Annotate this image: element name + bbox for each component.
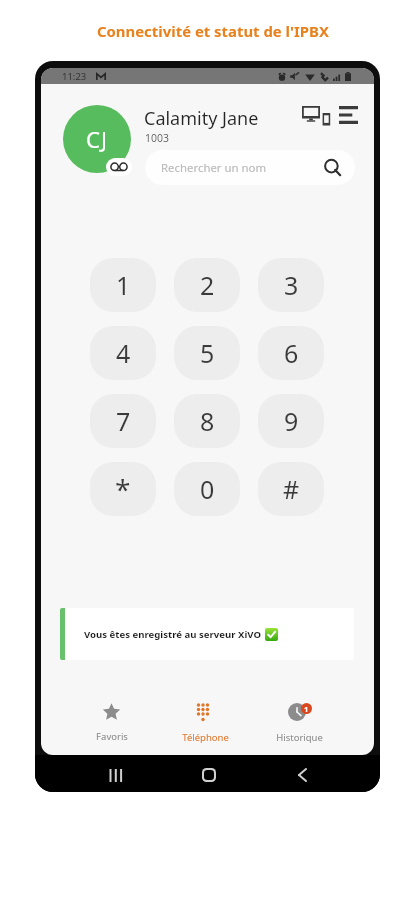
staticText: 11:23 [62, 70, 87, 83]
staticText: 8 [200, 404, 215, 438]
button[interactable]: Back [285, 758, 319, 792]
staticText: Connectivité et statut de l'IPBX [97, 21, 329, 41]
staticText: * [115, 470, 131, 508]
staticText: Calamity Jane [144, 106, 259, 131]
staticText: 1003 [145, 131, 170, 145]
staticText: Téléphone [182, 731, 229, 744]
staticText: 1 [304, 704, 309, 714]
button[interactable]: 1 [90, 258, 156, 312]
button[interactable]: 7 [90, 394, 156, 448]
button[interactable]: 8 [174, 394, 240, 448]
staticText: 2 [200, 268, 215, 302]
staticText: 0 [200, 472, 215, 506]
button[interactable]: Rechercher un nom [145, 150, 355, 185]
staticText: Historique [276, 731, 323, 744]
button[interactable]: Vous êtes enregistré au serveur XiVO [60, 608, 354, 660]
staticText: 1 [116, 268, 131, 302]
staticText: 9 [284, 404, 299, 438]
staticText: 5 [200, 336, 215, 370]
staticText: 6 [284, 336, 299, 370]
button[interactable]: 5 [174, 326, 240, 380]
button[interactable]: Recents [99, 758, 133, 792]
staticText: Rechercher un nom [161, 160, 267, 176]
button[interactable]: 0 [174, 462, 240, 516]
button[interactable]: 9 [258, 394, 324, 448]
button[interactable]: 6 [258, 326, 324, 380]
button[interactable]: 3 [258, 258, 324, 312]
staticText: Favoris [96, 730, 128, 743]
staticText: # [283, 472, 300, 506]
staticText: CJ [86, 124, 108, 154]
button[interactable]: # [258, 462, 324, 516]
staticText: 4 [116, 336, 131, 370]
button[interactable]: Menu [331, 100, 365, 132]
button[interactable]: 4 [90, 326, 156, 380]
button[interactable]: Devices [295, 100, 331, 132]
staticText: 3 [284, 268, 299, 302]
button[interactable]: * [90, 462, 156, 516]
button[interactable]: Téléphone [158, 689, 252, 755]
button[interactable]: 1 [252, 689, 346, 755]
button[interactable]: Home [192, 758, 226, 792]
button[interactable]: Favoris [65, 689, 158, 755]
staticText: Vous êtes enregistré au serveur XiVO [84, 628, 262, 641]
staticText: 7 [116, 404, 131, 438]
button[interactable]: 2 [174, 258, 240, 312]
